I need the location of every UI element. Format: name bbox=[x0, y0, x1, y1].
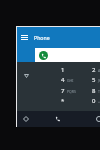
button[interactable]: * bbox=[61, 96, 91, 106]
button[interactable]: Recents bbox=[92, 112, 100, 126]
staticText: * bbox=[61, 97, 65, 105]
button[interactable]: 4 bbox=[61, 75, 91, 85]
staticText: 2 bbox=[92, 66, 96, 74]
button[interactable]: 1 bbox=[61, 65, 91, 75]
button[interactable]: Call bbox=[39, 51, 48, 60]
button[interactable]: 0 bbox=[92, 96, 100, 106]
staticText: 8 bbox=[92, 87, 96, 95]
button[interactable]: Expand keypad bbox=[20, 70, 32, 82]
staticText: 4 bbox=[61, 76, 65, 84]
button[interactable]: 5 bbox=[92, 75, 100, 85]
staticText: 1 bbox=[61, 66, 65, 74]
button[interactable]: 7 bbox=[61, 86, 91, 96]
staticText: 5 bbox=[92, 76, 96, 84]
staticText: 0 bbox=[92, 97, 96, 105]
button[interactable]: Menu bbox=[19, 32, 29, 43]
staticText: GHI bbox=[67, 78, 74, 83]
staticText: JKL bbox=[98, 78, 100, 83]
button[interactable]: Favourites bbox=[19, 112, 33, 126]
staticText: ABC bbox=[98, 68, 100, 73]
button[interactable]: 8 bbox=[92, 86, 100, 96]
staticText: + bbox=[98, 99, 100, 104]
staticText: PQRS bbox=[67, 89, 76, 94]
staticText: 7 bbox=[61, 87, 65, 95]
button[interactable]: 2 bbox=[92, 65, 100, 75]
staticText: Phone bbox=[34, 34, 50, 41]
staticText: TUV bbox=[98, 89, 100, 94]
button[interactable]: Dialpad bbox=[51, 112, 65, 126]
